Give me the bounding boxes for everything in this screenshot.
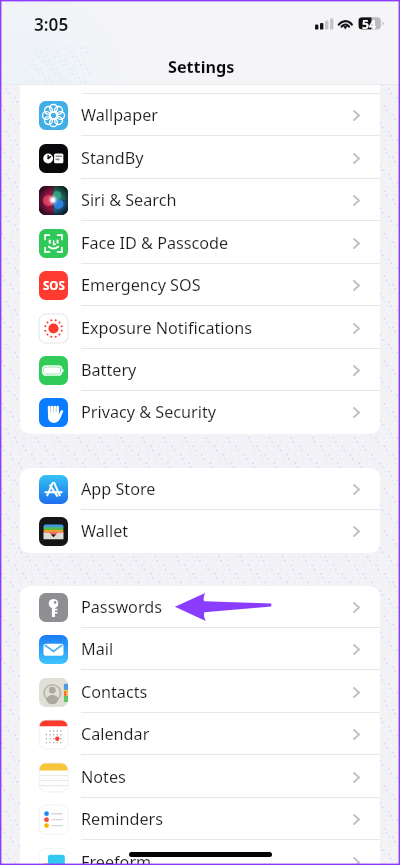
button[interactable]: Exposure Notifications [20,307,380,349]
staticText: SOS [43,278,65,294]
button[interactable]: Battery [20,349,380,391]
button[interactable]: Face ID & Passcode [20,222,380,264]
button[interactable]: Notes [20,756,380,798]
staticText: Calendar [81,723,150,745]
staticText: Privacy & Security [81,401,217,423]
staticText: Contacts [81,681,148,703]
button[interactable]: Siri & Search [20,179,380,221]
staticText: Freeform [81,851,152,865]
staticText: Face ID & Passcode [81,232,229,254]
staticText: Notes [81,766,126,788]
button[interactable]: Privacy & Security [20,391,380,433]
staticText: Settings [168,56,235,78]
staticText: Siri & Search [81,189,177,211]
staticText: Emergency SOS [81,274,201,296]
staticText: App Store [81,478,156,500]
button[interactable]: Wallpaper [20,94,380,136]
button[interactable]: Passwords [20,586,380,628]
staticText: 54 [362,16,376,33]
button[interactable]: Contacts [20,671,380,713]
button[interactable]: Calendar [20,713,380,755]
staticText: StandBy [81,147,144,169]
button[interactable]: SOS [20,264,380,306]
button[interactable]: Freeform [20,841,380,865]
staticText: Battery [81,359,137,381]
button[interactable]: Mail [20,628,380,670]
button[interactable]: Reminders [20,798,380,840]
button[interactable]: Wallet [20,510,380,552]
staticText: Wallpaper [81,104,158,126]
staticText: Reminders [81,808,164,830]
staticText: Mail [81,638,114,660]
button[interactable]: StandBy [20,137,380,179]
staticText: Passwords [81,596,162,618]
staticText: 3:05 [34,13,69,36]
staticText: Exposure Notifications [81,317,253,339]
staticText: Wallet [81,520,129,542]
button[interactable]: App Store [20,468,380,510]
